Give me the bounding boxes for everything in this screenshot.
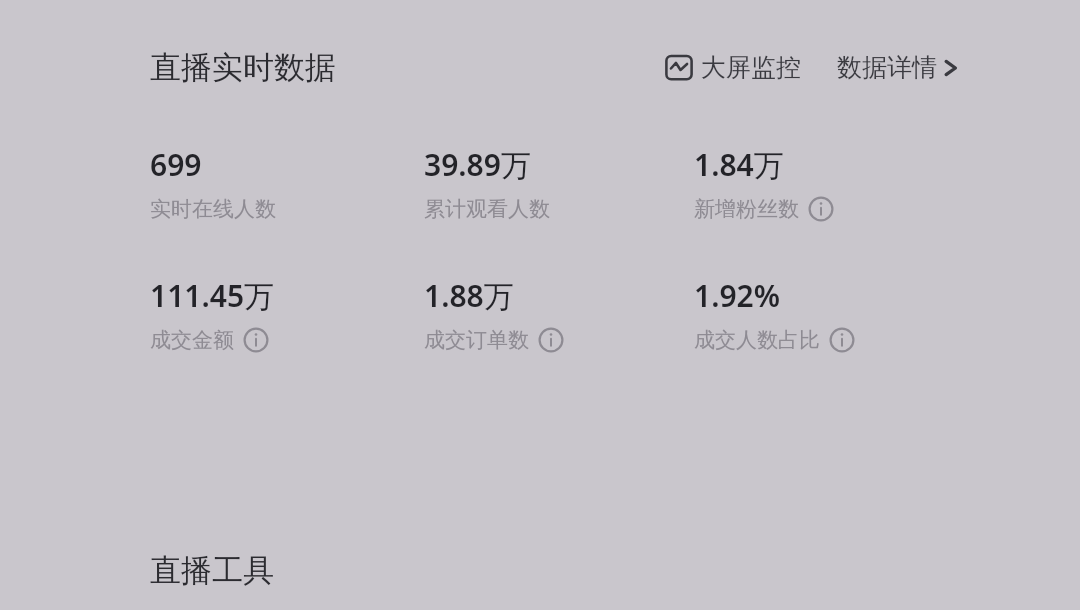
button[interactable]: 数据详情 [837, 52, 962, 83]
staticText: 数据详情 [837, 52, 937, 83]
button[interactable]: 说明 [808, 196, 834, 222]
staticText: 直播实时数据 [150, 48, 336, 87]
staticText: 大屏监控 [701, 52, 801, 83]
staticText: 实时在线人数 [150, 196, 276, 222]
button[interactable]: 说明 [538, 327, 564, 353]
staticText: 直播工具 [150, 551, 274, 590]
button[interactable]: 大屏监控 [664, 52, 801, 83]
staticText: 成交金额 [150, 327, 234, 353]
staticText: 1.88万 [424, 275, 514, 316]
staticText: 39.89万 [424, 144, 531, 185]
staticText: 111.45万 [150, 275, 275, 316]
button[interactable]: 说明 [829, 327, 855, 353]
staticText: 699 [150, 144, 202, 185]
staticText: 成交订单数 [424, 327, 529, 353]
button[interactable]: 说明 [243, 327, 269, 353]
staticText: 1.92% [694, 275, 781, 316]
staticText: 1.84万 [694, 144, 784, 185]
staticText: 累计观看人数 [424, 196, 550, 222]
staticText: 成交人数占比 [694, 327, 820, 353]
staticText: 新增粉丝数 [694, 196, 799, 222]
